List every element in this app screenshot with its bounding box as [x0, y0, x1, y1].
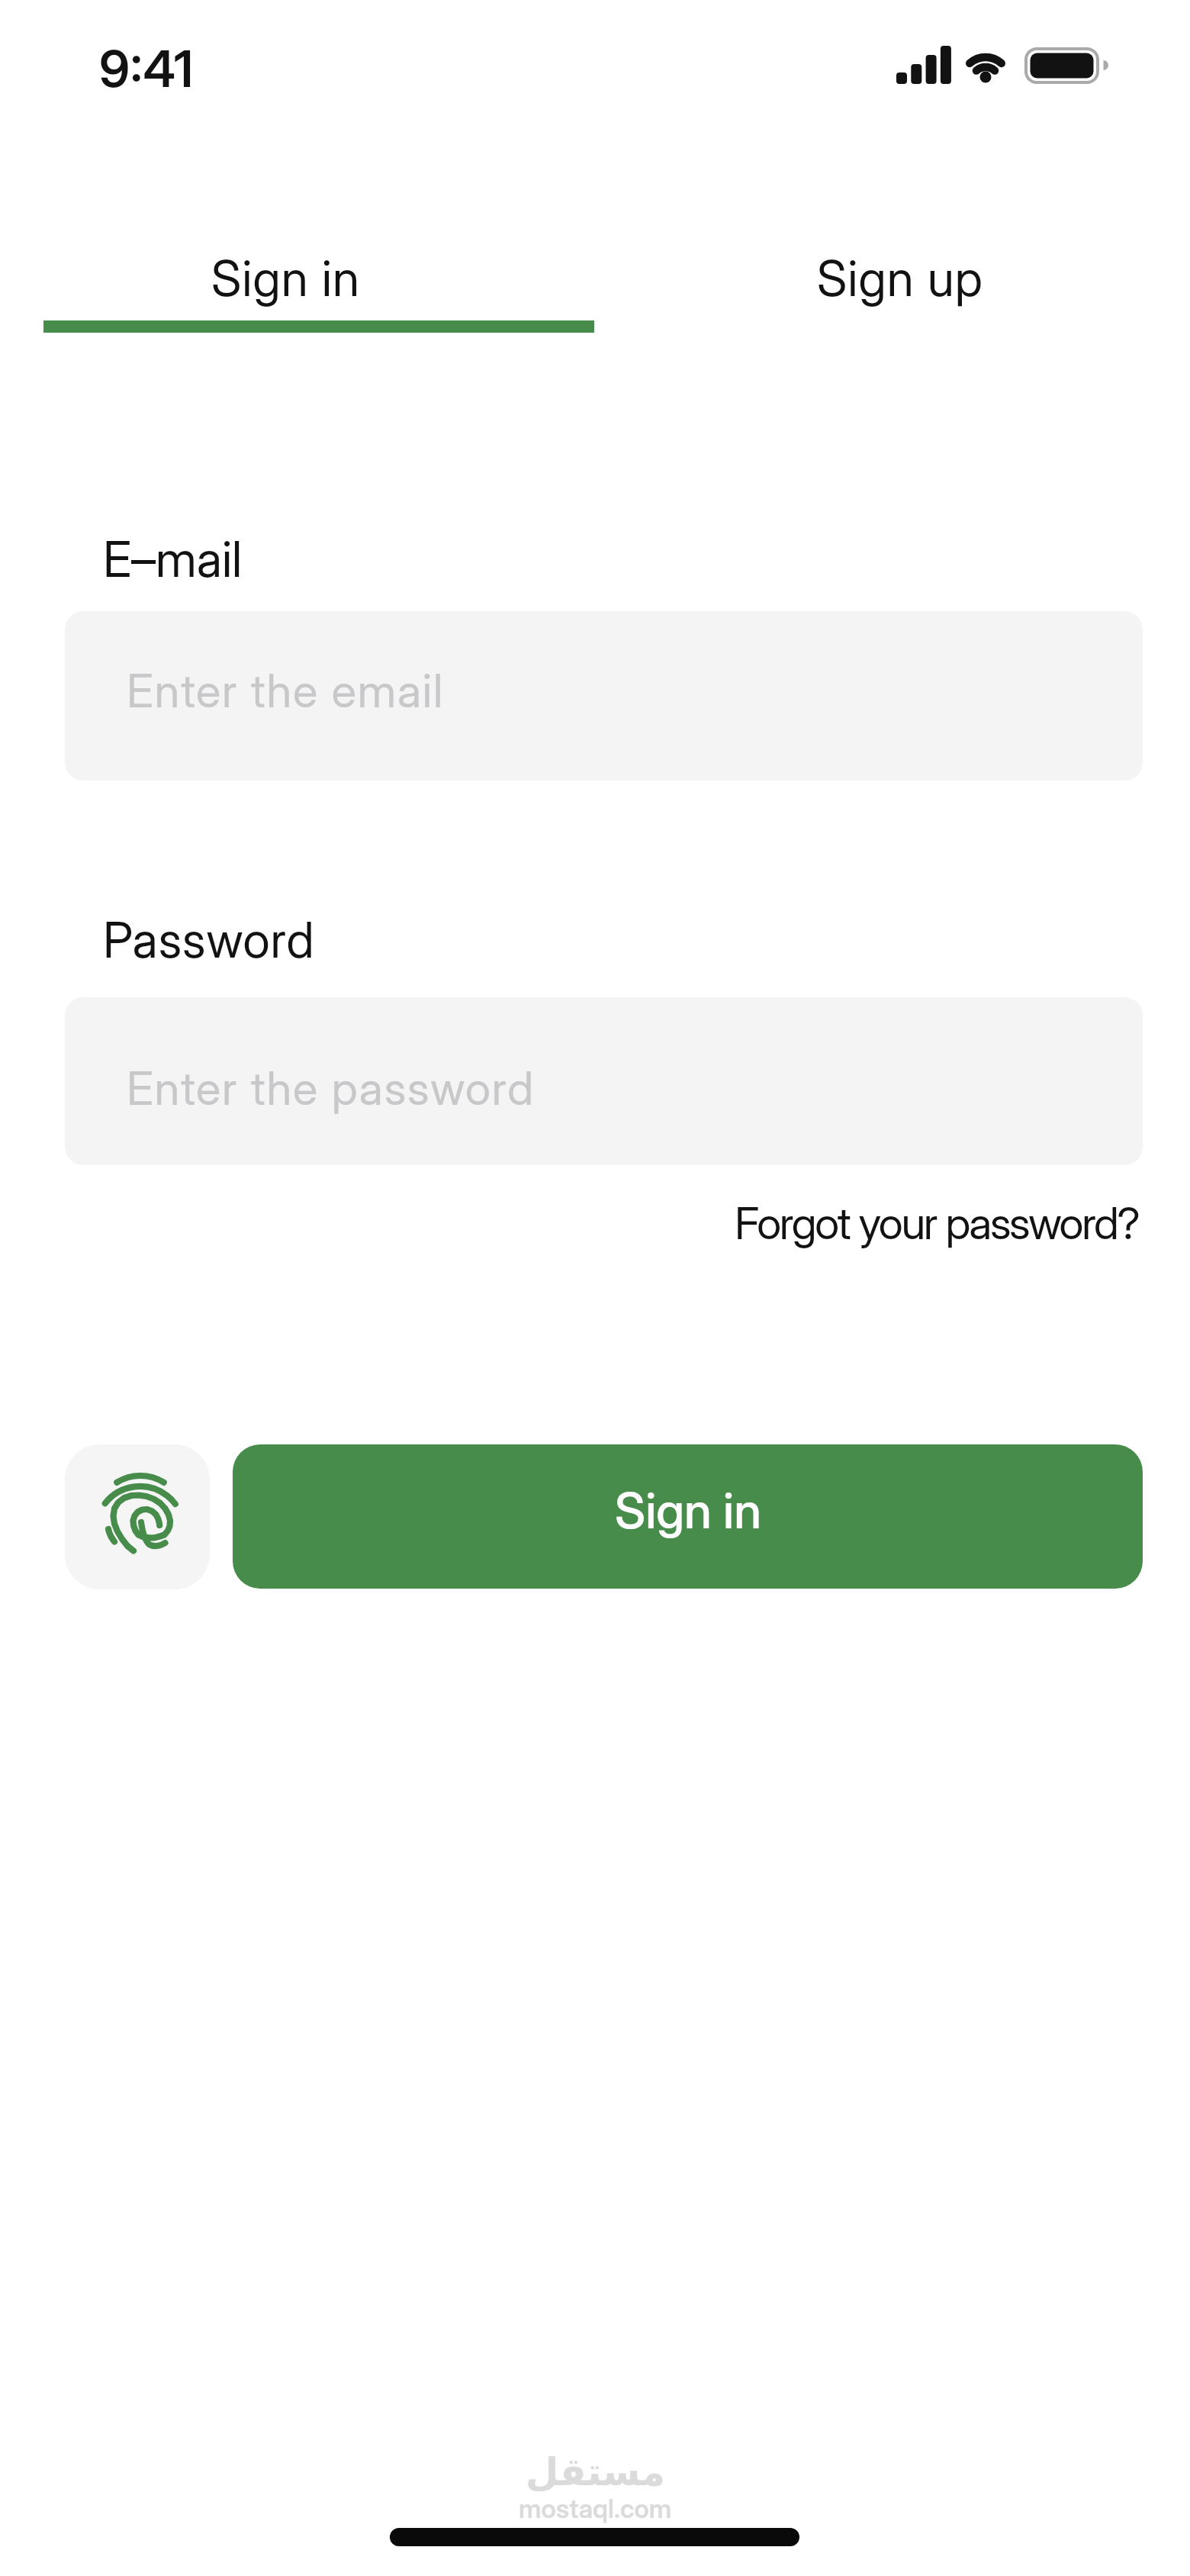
button[interactable]: Sign up [615, 249, 1185, 308]
staticText: 9:41 [99, 38, 195, 99]
button[interactable]: Enter the password [65, 997, 1143, 1165]
button[interactable]: Forgot your password? [0, 1196, 1139, 1250]
staticText: E–mail [103, 530, 243, 588]
staticText: Sign in [211, 249, 360, 308]
staticText: Enter the password [127, 1061, 535, 1116]
button[interactable] [65, 1444, 210, 1589]
button[interactable]: Sign in [233, 1444, 1143, 1589]
staticText: mostaql.com [519, 2493, 672, 2524]
staticText: Forgot your password? [735, 1196, 1139, 1250]
staticText: Password [103, 910, 315, 969]
staticText: مستقل [526, 2450, 665, 2494]
staticText: Sign in [615, 1481, 761, 1540]
staticText: Sign up [817, 249, 983, 308]
staticText: Enter the email [127, 663, 445, 719]
button[interactable]: Enter the email [65, 611, 1143, 781]
button[interactable]: Sign in [0, 249, 571, 308]
